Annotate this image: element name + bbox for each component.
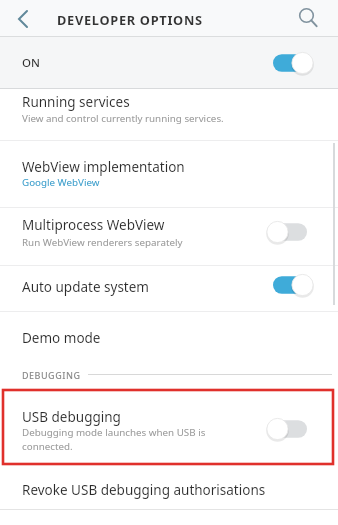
staticText: Running services — [22, 93, 130, 111]
button[interactable] — [8, 4, 40, 34]
staticText: DEVELOPER OPTIONS — [57, 11, 203, 28]
staticText: Run WebView renderers separately — [22, 236, 183, 249]
button[interactable] — [292, 2, 326, 36]
staticText: Debugging mode launches when USB is conn… — [22, 426, 206, 452]
button[interactable] — [0, 311, 338, 356]
button[interactable] — [0, 465, 338, 510]
staticText: DEBUGGING — [22, 369, 81, 381]
button[interactable] — [0, 89, 338, 140]
button[interactable] — [0, 37, 338, 89]
button[interactable] — [0, 207, 338, 265]
staticText: Demo mode — [22, 329, 101, 347]
staticText: ON — [22, 55, 40, 71]
button[interactable] — [0, 265, 338, 311]
staticText: Multiprocess WebView — [22, 216, 165, 234]
staticText: View and control currently running servi… — [22, 112, 224, 125]
staticText: WebView implementation — [22, 158, 185, 176]
staticText: Revoke USB debugging authorisations — [22, 481, 266, 499]
staticText: Google WebView — [22, 176, 100, 189]
button[interactable] — [0, 140, 338, 207]
button[interactable] — [0, 389, 338, 465]
staticText: USB debugging — [22, 408, 121, 426]
staticText: Auto update system — [22, 278, 149, 296]
